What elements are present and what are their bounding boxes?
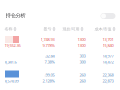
staticText: 13,701 [102,37,113,42]
button[interactable]: 名称 [4,25,44,32]
staticText: 22,368 [102,72,113,78]
staticText: 2.128% [42,78,54,84]
staticText: 19,552.36 [4,43,20,48]
staticText: 9.778% [42,43,54,48]
staticText: 4,574.09 [4,78,18,84]
staticText: 300 [79,59,85,65]
staticText: -32.84 [44,53,54,59]
staticText: 303 [79,53,85,59]
staticText: 260 [79,78,85,84]
button[interactable]: 成本/市值 [75,25,115,32]
staticText: 成本/市值 [94,26,111,32]
button[interactable]: 盈亏 [15,25,55,32]
button[interactable]: Switch display mode [100,13,115,19]
staticText: 现价/可用 [62,26,79,32]
staticText: 持仓分析 [5,12,25,19]
staticText: 名称 [4,26,12,31]
staticText: 1,748.93 [40,37,54,42]
staticText: 15,840 [102,43,113,48]
staticText: 盈亏 [43,26,51,31]
staticText: 4,341.6 [4,59,16,65]
staticText: 7.38% [44,59,54,65]
button[interactable]: 现价/可用 [43,25,83,32]
staticText: -99.05 [44,72,54,78]
staticText: 14,472 [102,59,113,65]
staticText: 22,873 [102,78,113,84]
staticText: 260 [79,72,85,78]
staticText: 14,977 [102,53,113,59]
staticText: 1300 [77,43,85,48]
staticText: 1300 [77,37,85,42]
